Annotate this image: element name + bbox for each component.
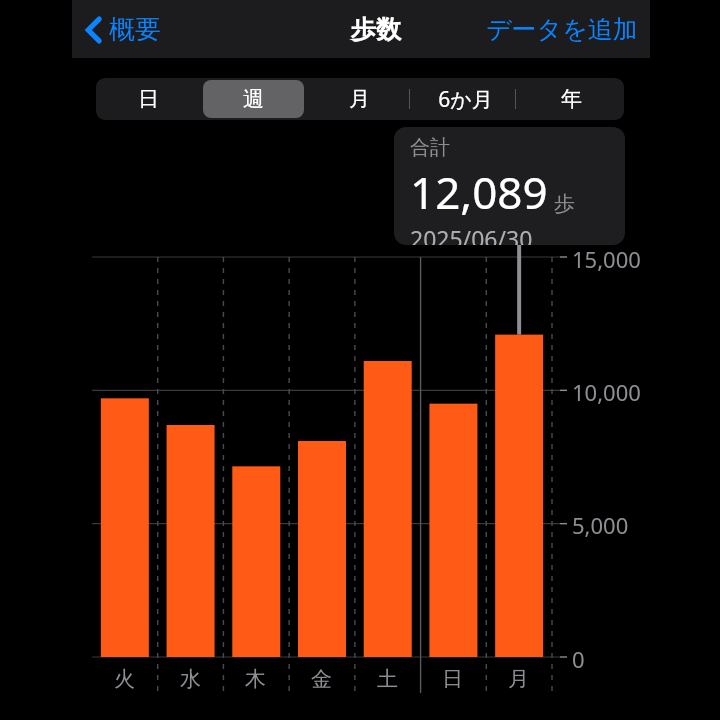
staticText: 年 [561, 86, 582, 112]
button[interactable]: データを追加 [480, 8, 644, 51]
staticText: 木 [245, 666, 266, 692]
staticText: 概要 [109, 13, 161, 46]
staticText: 12,089 [410, 162, 548, 222]
staticText: データを追加 [486, 14, 638, 45]
staticText: 2025/06/30 [410, 223, 533, 245]
button[interactable]: 日 [98, 80, 199, 118]
button[interactable]: 年 [520, 80, 622, 118]
staticText: 週 [243, 86, 264, 112]
staticText: 日 [138, 86, 159, 112]
staticText: 月 [508, 666, 529, 692]
staticText: 6か月 [438, 85, 493, 114]
staticText: 火 [114, 666, 135, 692]
button[interactable]: 概要 [82, 7, 165, 52]
staticText: 10,000 [572, 377, 641, 407]
staticText: 0 [572, 644, 585, 674]
staticText: 歩 [554, 191, 575, 217]
staticText: 合計 [410, 135, 450, 160]
staticText: 土 [377, 666, 398, 692]
staticText: 金 [311, 666, 332, 692]
staticText: 15,000 [572, 244, 641, 274]
staticText: 月 [349, 86, 370, 112]
staticText: 5,000 [572, 510, 629, 540]
staticText: 歩数 [351, 14, 401, 45]
button[interactable]: 6か月 [414, 80, 516, 118]
button[interactable]: 月 [308, 80, 410, 118]
staticText: 水 [180, 666, 201, 692]
button[interactable]: 週 [203, 80, 304, 118]
staticText: 日 [442, 666, 463, 692]
